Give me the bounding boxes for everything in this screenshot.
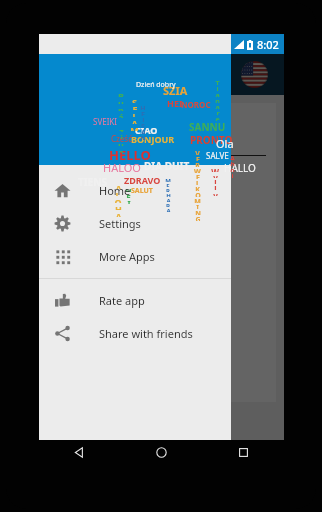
staticText: SVEIKI [93, 116, 118, 127]
staticText: u [118, 139, 124, 146]
staticText: E [126, 192, 131, 198]
button[interactable]: Back [39, 446, 120, 474]
staticText: á [118, 111, 124, 118]
staticText: E [141, 110, 145, 116]
staticText: A [166, 207, 171, 212]
staticText: O [195, 191, 201, 197]
staticText: DIA DUIT [144, 159, 190, 173]
staticText: V [195, 149, 200, 155]
staticText: l [214, 178, 217, 184]
staticText: I [196, 203, 199, 209]
staticText: Rate app [99, 293, 145, 308]
button[interactable]: Home [39, 174, 231, 207]
staticText: A [166, 197, 171, 202]
staticText: H [140, 104, 146, 110]
staticText: a [118, 146, 124, 153]
staticText: Share with friends [99, 326, 193, 341]
staticText: HALOO [103, 160, 141, 175]
staticText: z [119, 125, 124, 132]
staticText: Home [99, 183, 131, 198]
staticText: H [166, 192, 171, 197]
staticText: M [194, 197, 201, 203]
staticText: T [215, 79, 220, 85]
staticText: SALUT [131, 186, 153, 196]
staticText: H [125, 186, 132, 192]
staticText: K [195, 185, 200, 191]
staticText: j [231, 172, 234, 178]
staticText: S [141, 122, 145, 128]
staticText: B [118, 90, 124, 97]
staticText: W [194, 167, 201, 173]
staticText: A [115, 182, 122, 189]
staticText: O [114, 196, 122, 203]
staticText: y [213, 172, 218, 178]
staticText: L [196, 179, 200, 185]
staticText: u [118, 97, 124, 104]
staticText: y [213, 190, 218, 196]
staticText: a [215, 103, 220, 109]
staticText: HEI [167, 97, 183, 109]
staticText: W [211, 166, 219, 172]
staticText: i [120, 132, 123, 139]
staticText: a [215, 91, 220, 97]
staticText: SALVE [206, 150, 229, 161]
button[interactable]: More Apps [39, 240, 231, 273]
button[interactable]: Share with friends [39, 317, 231, 350]
button[interactable]: Recent apps [202, 446, 284, 474]
staticText: n [215, 97, 220, 103]
staticText: E [196, 155, 200, 161]
staticText: M [130, 124, 139, 131]
button[interactable]: Rate app [39, 284, 231, 317]
staticText: ZDRAVO [124, 174, 161, 186]
staticText: Dzień dobry [136, 80, 176, 90]
staticText: E [166, 182, 170, 187]
staticText: A [141, 128, 146, 134]
staticText: N [140, 134, 146, 140]
staticText: E [196, 173, 200, 179]
staticText: TIENS [78, 175, 107, 189]
staticText: Cześć [111, 133, 132, 144]
staticText: h [230, 160, 235, 166]
staticText: CIAO [135, 124, 158, 136]
staticText: 8:02 [257, 37, 279, 52]
staticText: Ola [216, 136, 234, 151]
staticText: BONJOUR [131, 133, 175, 145]
staticText: o [230, 166, 235, 172]
button[interactable]: Change language [241, 61, 268, 88]
staticText: Settings [99, 216, 141, 231]
staticText: HELLO [109, 146, 151, 164]
staticText: More Apps [99, 249, 155, 264]
button[interactable]: HELLO [39, 54, 231, 165]
staticText: R [195, 161, 200, 167]
staticText: R [166, 187, 170, 192]
staticText: A [115, 210, 122, 217]
staticText: l [214, 184, 217, 190]
staticText: S [132, 96, 137, 103]
staticText: A [230, 154, 235, 160]
staticText: SANNU [189, 120, 226, 134]
staticText: I [127, 198, 131, 204]
staticText: r [216, 109, 220, 115]
staticText: n [118, 104, 124, 111]
staticText: N [195, 209, 201, 215]
staticText: HALLO [224, 161, 256, 175]
staticText: B [166, 202, 170, 207]
button[interactable]: Settings [39, 207, 231, 240]
staticText: PRONTO [190, 133, 233, 147]
staticText: L [132, 110, 138, 117]
staticText: J [142, 116, 145, 122]
staticText: G [195, 215, 201, 221]
staticText: M [165, 177, 171, 182]
staticText: H [115, 203, 122, 210]
staticText: SZIA [163, 83, 188, 98]
staticText: e [215, 115, 220, 121]
staticText: E [132, 103, 138, 110]
staticText: NOROC [181, 99, 211, 110]
staticText: L [115, 189, 121, 196]
staticText: j [216, 85, 219, 91]
staticText: A [131, 117, 138, 124]
button[interactable]: Home [120, 446, 202, 474]
